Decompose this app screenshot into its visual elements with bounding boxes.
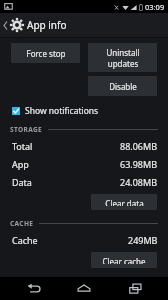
button[interactable]: Back [17, 277, 51, 300]
staticText: Show notifications [25, 105, 99, 117]
staticText: 24.08MB [120, 176, 158, 188]
button[interactable]: Home [67, 277, 101, 300]
staticText: 63.98MB [120, 158, 158, 170]
button[interactable]: Total [0, 137, 168, 155]
staticText: Cache [12, 234, 38, 246]
staticText: App [12, 158, 29, 170]
staticText: Data [12, 176, 32, 188]
button[interactable]: Show notifications [0, 103, 168, 119]
staticText: Force stop [26, 48, 66, 59]
staticText: CACHE [10, 219, 34, 228]
button[interactable]: Force stop [11, 43, 80, 63]
button[interactable]: Disable [88, 76, 157, 96]
staticText: 249MB [128, 234, 158, 246]
button[interactable]: Uninstall updates [88, 43, 157, 72]
button[interactable]: Data [0, 173, 168, 191]
staticText: 88.06MB [120, 140, 158, 152]
button[interactable]: Clear cache [91, 252, 157, 268]
button[interactable]: Recent apps [118, 277, 152, 300]
staticText: App info [27, 18, 67, 32]
staticText: Clear cache [102, 256, 146, 264]
staticText: Disable [109, 81, 137, 92]
button[interactable]: Cache [0, 231, 168, 249]
staticText: 03:09 [145, 2, 165, 12]
button[interactable]: Clear data [91, 194, 157, 210]
staticText: Uninstall updates [106, 47, 140, 69]
staticText: Total [12, 140, 33, 152]
staticText: STORAGE [10, 125, 43, 134]
button[interactable]: Navigate up, App info [0, 13, 168, 37]
staticText: Clear data [105, 198, 144, 206]
button[interactable]: App [0, 155, 168, 173]
